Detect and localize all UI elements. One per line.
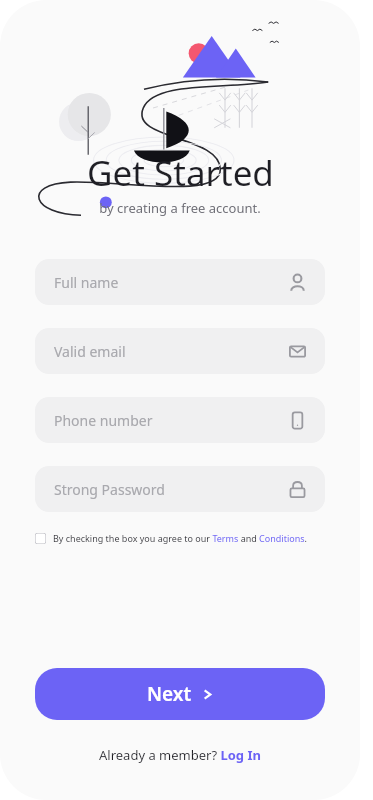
- staticText: by creating a free account.: [99, 199, 261, 217]
- button[interactable]: Valid email: [35, 328, 325, 374]
- staticText: Phone number: [54, 411, 153, 430]
- staticText: Strong Password: [54, 480, 165, 499]
- button[interactable]: Next: [35, 668, 325, 720]
- button[interactable]: Strong Password: [35, 466, 325, 512]
- button[interactable]: Phone number: [35, 397, 325, 443]
- button[interactable]: Full name: [35, 259, 325, 305]
- staticText: By checking the box you agree to our Ter…: [53, 532, 307, 544]
- staticText: Full name: [54, 273, 119, 292]
- button[interactable]: Already a member? Log In: [0, 746, 360, 764]
- staticText: Valid email: [54, 342, 126, 361]
- button[interactable]: By checking the box you agree to our Ter…: [35, 532, 325, 544]
- staticText: Next: [147, 681, 192, 707]
- staticText: Already a member? Log In: [99, 746, 261, 764]
- staticText: Get Started: [87, 149, 274, 197]
